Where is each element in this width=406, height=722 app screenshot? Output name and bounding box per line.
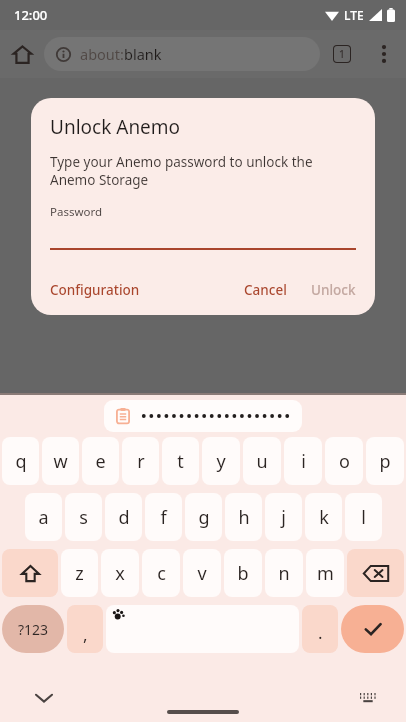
button[interactable]: t (162, 437, 199, 485)
button[interactable]: More options (364, 34, 404, 74)
button[interactable]: u (243, 437, 281, 485)
button[interactable]: w (42, 437, 79, 485)
button[interactable]: Home (0, 32, 44, 76)
staticText: k (319, 505, 329, 530)
button[interactable]: Space (106, 605, 299, 653)
button[interactable]: ?123 (2, 605, 64, 653)
staticText: w (53, 449, 68, 474)
staticText: t (177, 449, 184, 474)
button[interactable]: z (61, 549, 98, 597)
staticText: h (238, 505, 250, 530)
staticText: c (157, 561, 166, 586)
button[interactable]: a (25, 493, 62, 541)
button[interactable]: Backspace (347, 549, 404, 597)
button[interactable]: Switch keyboard (352, 682, 384, 714)
button[interactable]: Unlock (311, 279, 356, 301)
staticText: u (256, 449, 268, 474)
button[interactable]: Hide keyboard (28, 682, 60, 714)
staticText: ?123 (18, 620, 49, 639)
button[interactable]: g (185, 493, 222, 541)
staticText: g (198, 505, 210, 530)
staticText: b (237, 561, 249, 586)
button[interactable]: n (265, 549, 303, 597)
staticText: l (361, 505, 366, 530)
button[interactable]: b (224, 549, 262, 597)
button[interactable]: , (67, 605, 103, 653)
button[interactable]: Shift (2, 549, 58, 597)
button[interactable]: x (101, 549, 139, 597)
button[interactable] (104, 400, 302, 432)
staticText: v (197, 561, 207, 586)
staticText: i (301, 449, 306, 474)
staticText: z (75, 561, 84, 586)
button[interactable]: e (82, 437, 119, 485)
staticText: m (317, 561, 334, 586)
staticText: d (118, 505, 130, 530)
staticText: n (278, 561, 290, 586)
staticText: 1 (339, 47, 345, 61)
button[interactable]: . (302, 605, 338, 653)
staticText: Password (50, 204, 103, 220)
staticText: y (216, 449, 226, 474)
staticText: x (115, 561, 125, 586)
button[interactable]: k (305, 493, 342, 541)
staticText: q (15, 449, 27, 474)
button[interactable]: i (284, 437, 322, 485)
staticText: LTE (344, 7, 364, 23)
staticText: 12:00 (14, 6, 48, 24)
button[interactable]: p (366, 437, 404, 485)
button[interactable]: v (183, 549, 221, 597)
staticText: j (281, 505, 286, 530)
button[interactable]: s (65, 493, 102, 541)
staticText: blank (124, 44, 162, 64)
button[interactable]: y (202, 437, 240, 485)
staticText: a (38, 505, 49, 530)
button[interactable]: r (122, 437, 159, 485)
staticText: p (379, 449, 391, 474)
button[interactable]: h (225, 493, 262, 541)
button[interactable]: Enter (341, 605, 404, 653)
button[interactable]: j (265, 493, 302, 541)
button[interactable]: Configuration (50, 279, 140, 301)
button[interactable]: m (306, 549, 344, 597)
staticText: Type your Anemo password to unlock the A… (50, 153, 356, 189)
button[interactable]: c (142, 549, 180, 597)
staticText: e (95, 449, 106, 474)
button[interactable]: Cancel (244, 279, 287, 301)
button[interactable]: d (105, 493, 142, 541)
button[interactable]: o (325, 437, 363, 485)
staticText: about: (80, 44, 124, 64)
button[interactable]: f (145, 493, 182, 541)
staticText: o (339, 449, 350, 474)
staticText: s (79, 505, 88, 530)
staticText: , (83, 623, 88, 646)
staticText: r (137, 449, 145, 474)
staticText: . (318, 621, 323, 644)
button[interactable]: l (345, 493, 382, 541)
button[interactable]: about: (44, 37, 320, 71)
button[interactable]: q (2, 437, 39, 485)
button[interactable]: Tabs (320, 32, 364, 76)
staticText: f (160, 505, 167, 530)
staticText: Unlock Anemo (50, 114, 181, 140)
